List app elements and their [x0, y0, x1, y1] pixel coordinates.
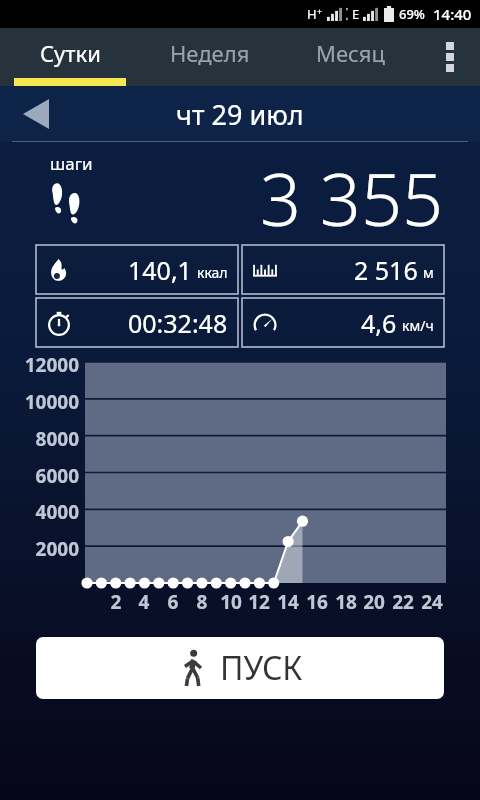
- button[interactable]: ПУСК: [36, 637, 444, 699]
- staticText: чт 29 июл: [176, 96, 304, 133]
- button[interactable]: Месяц: [280, 28, 420, 86]
- staticText: 3 355: [260, 149, 444, 247]
- staticText: 8: [185, 589, 219, 615]
- staticText: 69%: [399, 5, 425, 23]
- staticText: ПУСК: [220, 646, 303, 690]
- button[interactable]: Неделя: [140, 28, 280, 86]
- staticText: +: [317, 5, 323, 17]
- staticText: 4,6: [361, 306, 397, 340]
- staticText: 140,1: [128, 253, 192, 287]
- staticText: 6: [156, 589, 190, 615]
- staticText: 14:40: [433, 4, 472, 24]
- staticText: 18: [329, 589, 363, 615]
- staticText: 12: [242, 589, 276, 615]
- staticText: 10: [214, 589, 248, 615]
- staticText: 16: [300, 589, 334, 615]
- staticText: км/ч: [402, 316, 434, 335]
- staticText: 20: [357, 589, 391, 615]
- staticText: 8000: [0, 426, 79, 452]
- button[interactable]: 4,6: [242, 298, 444, 347]
- staticText: 24: [415, 589, 449, 615]
- staticText: 4000: [0, 499, 79, 525]
- staticText: 12000: [0, 352, 79, 378]
- staticText: H: [307, 5, 317, 23]
- button[interactable]: 00:32:48: [36, 298, 238, 347]
- staticText: Сутки: [40, 38, 101, 68]
- staticText: 2: [99, 589, 133, 615]
- staticText: 6000: [0, 463, 79, 489]
- staticText: 00:32:48: [128, 306, 228, 340]
- button[interactable]: More options: [420, 28, 480, 86]
- staticText: ккал: [197, 263, 228, 282]
- staticText: 2 516: [354, 253, 418, 287]
- staticText: м: [423, 263, 434, 282]
- staticText: Неделя: [170, 38, 250, 68]
- button[interactable]: 2 516: [242, 245, 444, 294]
- staticText: 4: [127, 589, 161, 615]
- staticText: 2000: [0, 536, 79, 562]
- button[interactable]: 140,1: [36, 245, 238, 294]
- staticText: Месяц: [316, 38, 385, 68]
- staticText: E: [352, 5, 360, 23]
- staticText: 22: [386, 589, 420, 615]
- staticText: 14: [271, 589, 305, 615]
- button[interactable]: Previous day: [12, 90, 60, 138]
- staticText: шаги: [50, 152, 93, 175]
- staticText: 10000: [0, 389, 79, 415]
- button[interactable]: Сутки: [0, 28, 140, 86]
